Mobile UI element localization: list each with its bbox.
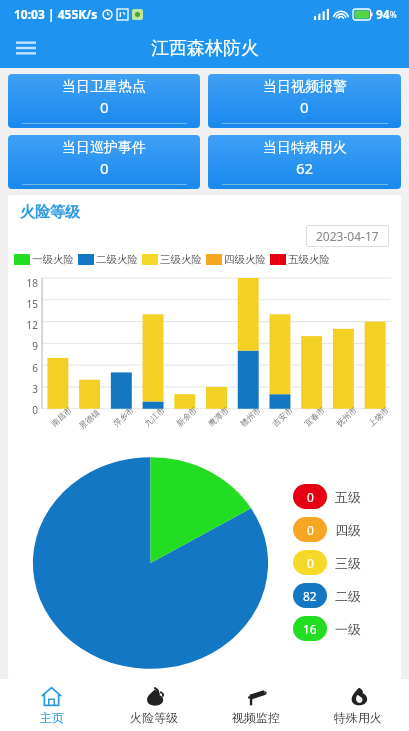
- staticText: 二级火险: [96, 253, 138, 266]
- staticText: 吉安市: [270, 405, 295, 428]
- staticText: 视频监控: [232, 710, 280, 725]
- button[interactable]: 主页: [0, 679, 103, 731]
- button[interactable]: 当日视频报警: [208, 74, 401, 128]
- button[interactable]: 视频监控: [205, 679, 307, 731]
- staticText: 特殊用火: [334, 710, 382, 725]
- button[interactable]: 2023-04-17: [306, 225, 389, 247]
- staticText: 16: [303, 621, 317, 637]
- staticText: 主页: [40, 710, 64, 725]
- staticText: 火险等级: [130, 710, 178, 725]
- staticText: 12: [14, 318, 38, 332]
- staticText: 五级火险: [288, 253, 330, 266]
- staticText: 二级: [335, 588, 361, 604]
- staticText: 6: [14, 361, 38, 375]
- staticText: 62: [296, 158, 314, 178]
- staticText: 一级: [335, 621, 361, 637]
- staticText: %: [390, 9, 397, 20]
- button[interactable]: 当日卫星热点: [8, 74, 200, 128]
- button[interactable]: 0: [293, 517, 401, 542]
- staticText: 0: [100, 158, 109, 178]
- staticText: 当日卫星热点: [62, 78, 146, 96]
- staticText: 五级: [335, 489, 361, 505]
- staticText: 94: [376, 6, 390, 22]
- staticText: 82: [303, 588, 317, 604]
- staticText: 上饶市: [366, 405, 391, 428]
- staticText: 鹰潭市: [206, 405, 231, 428]
- staticText: 9: [14, 339, 38, 353]
- staticText: 四级火险: [224, 253, 266, 266]
- button[interactable]: 当日特殊用火: [208, 135, 401, 189]
- staticText: 0: [307, 555, 314, 571]
- staticText: 0: [300, 97, 309, 117]
- staticText: 南昌市: [49, 405, 74, 428]
- button[interactable]: 82: [293, 583, 401, 608]
- staticText: 三级火险: [160, 253, 202, 266]
- staticText: 0: [14, 403, 38, 417]
- staticText: 18: [14, 276, 38, 290]
- button[interactable]: 0: [293, 484, 401, 509]
- staticText: 火险等级: [20, 203, 80, 222]
- staticText: 萍乡市: [111, 405, 136, 428]
- button[interactable]: 0: [293, 550, 401, 575]
- button[interactable]: 特殊用火: [307, 679, 409, 731]
- button[interactable]: 火险等级: [103, 679, 205, 731]
- staticText: 0: [307, 489, 314, 505]
- button[interactable]: 当日巡护事件: [8, 135, 200, 189]
- staticText: 3: [14, 382, 38, 396]
- staticText: 2023-04-17: [316, 228, 379, 244]
- staticText: 新余市: [174, 405, 199, 428]
- staticText: 一级火险: [32, 253, 74, 266]
- staticText: 0: [100, 97, 109, 117]
- staticText: 景德镇市: [77, 403, 107, 431]
- staticText: 九江市: [142, 405, 167, 428]
- button[interactable]: Menu: [8, 30, 44, 66]
- staticText: 抚州市: [334, 405, 359, 428]
- staticText: 当日视频报警: [263, 78, 347, 96]
- staticText: 四级: [335, 522, 361, 538]
- staticText: 江西森林防火: [151, 37, 259, 60]
- staticText: 宜春市: [302, 405, 327, 428]
- staticText: 当日巡护事件: [62, 139, 146, 157]
- staticText: 0: [307, 522, 314, 538]
- staticText: 三级: [335, 555, 361, 571]
- staticText: 当日特殊用火: [263, 139, 347, 157]
- staticText: 15: [14, 297, 38, 311]
- button[interactable]: 16: [293, 616, 401, 641]
- staticText: 10:03 | 455K/s: [14, 6, 98, 22]
- staticText: 赣州市: [238, 405, 263, 428]
